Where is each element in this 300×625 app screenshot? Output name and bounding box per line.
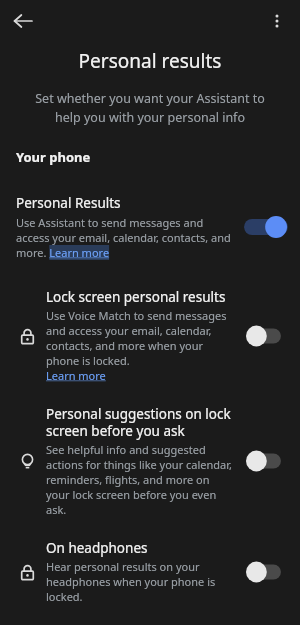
button[interactable]: More options bbox=[260, 4, 294, 38]
button[interactable]: Suggestions bbox=[0, 405, 300, 517]
staticText: Your phone bbox=[16, 148, 91, 166]
other: Lock bbox=[16, 561, 38, 583]
button[interactable]: Lock bbox=[0, 288, 300, 383]
other: Suggestions bbox=[16, 450, 38, 472]
staticText: Hear personal results on your headphones… bbox=[46, 559, 234, 604]
button[interactable]: Toggle on bbox=[244, 214, 288, 240]
staticText: Use Assistant to send messages and acces… bbox=[16, 215, 234, 260]
staticText: Use Voice Match to send messages and acc… bbox=[46, 308, 234, 383]
button[interactable]: Back bbox=[6, 4, 40, 38]
button[interactable]: Personal Results bbox=[0, 192, 300, 262]
staticText: Personal results bbox=[0, 48, 300, 74]
staticText: On headphones bbox=[46, 539, 148, 557]
button[interactable]: Toggle off bbox=[244, 448, 288, 474]
button[interactable]: Toggle off bbox=[244, 559, 288, 585]
staticText: See helpful info and suggested actions f… bbox=[46, 442, 234, 517]
staticText: Lock screen personal results bbox=[46, 288, 226, 306]
button[interactable]: Lock bbox=[0, 539, 300, 604]
other: Lock bbox=[16, 325, 38, 347]
staticText: Set whether you want your Assistant to h… bbox=[22, 90, 278, 126]
staticText: Personal suggestions on lock screen befo… bbox=[46, 405, 234, 440]
staticText: Personal Results bbox=[16, 194, 121, 212]
button[interactable]: Toggle off bbox=[244, 323, 288, 349]
